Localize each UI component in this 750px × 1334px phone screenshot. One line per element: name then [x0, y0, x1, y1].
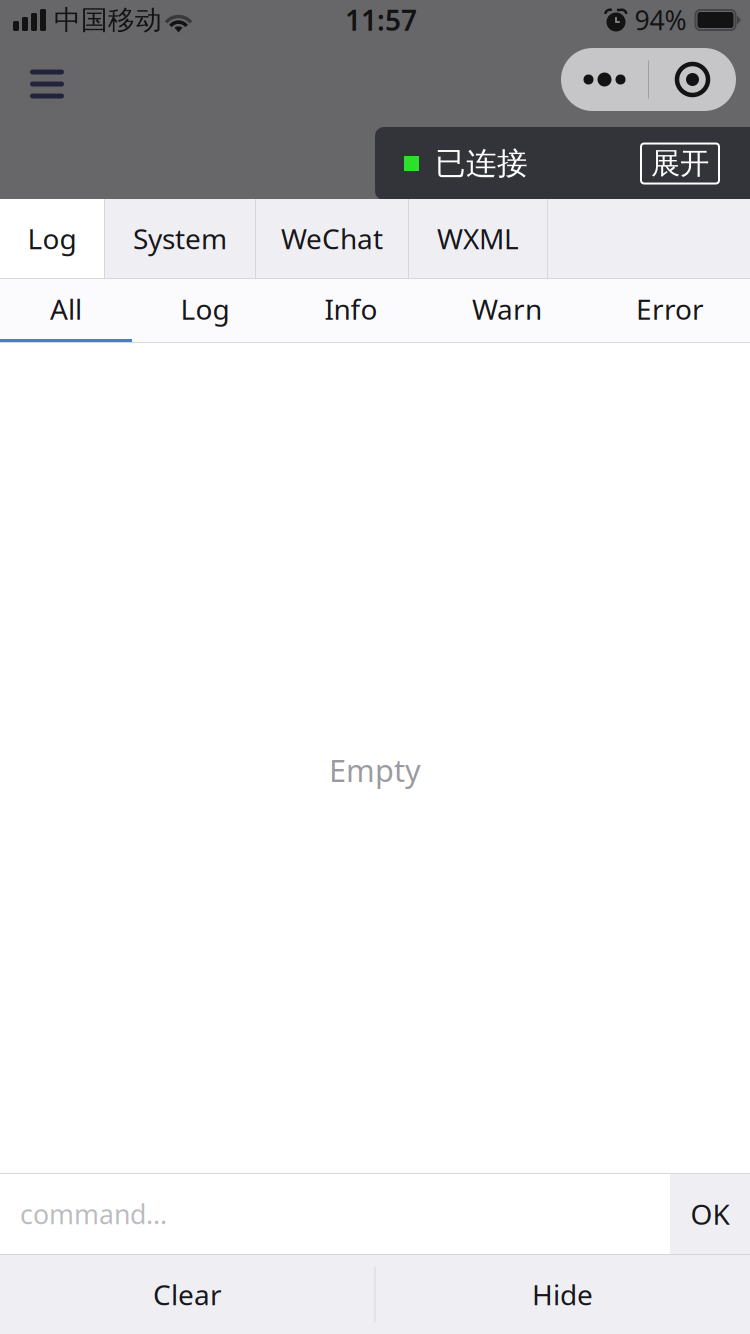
button[interactable]: WXML [409, 199, 547, 278]
button[interactable]: 展开 [641, 143, 719, 183]
button[interactable]: Log [0, 199, 104, 278]
button[interactable]: All [0, 279, 132, 342]
staticText: Log [27, 220, 76, 257]
button[interactable]: Clear [0, 1255, 375, 1334]
staticText: WXML [437, 220, 519, 257]
staticText: Log [180, 290, 229, 328]
staticText: Empty [329, 750, 421, 790]
staticText: All [50, 290, 82, 328]
button[interactable]: Log [132, 279, 278, 342]
staticText: 已连接 [435, 145, 528, 182]
staticText: Info [324, 290, 377, 328]
button[interactable]: Info [278, 279, 424, 342]
button[interactable]: Close mini program [649, 48, 736, 111]
button[interactable]: More [561, 48, 648, 111]
staticText: 中国移动 [54, 4, 162, 36]
button[interactable]: Hide [375, 1255, 750, 1334]
staticText: Clear [153, 1276, 222, 1313]
staticText: Hide [532, 1276, 593, 1313]
staticText: System [133, 220, 227, 257]
staticText: WeChat [281, 220, 383, 257]
staticText: command... [20, 1196, 167, 1232]
staticText: 94% [634, 2, 686, 38]
staticText: OK [690, 1195, 729, 1233]
button[interactable]: System [105, 199, 255, 278]
staticText: 11:57 [345, 1, 417, 39]
button[interactable]: Error [590, 279, 750, 342]
staticText: Error [636, 290, 704, 328]
button[interactable]: WeChat [256, 199, 408, 278]
staticText: 展开 [651, 145, 709, 181]
staticText: Warn [472, 290, 542, 328]
button[interactable]: Warn [424, 279, 590, 342]
button[interactable]: Menu [18, 62, 76, 106]
button[interactable]: OK [670, 1174, 750, 1254]
